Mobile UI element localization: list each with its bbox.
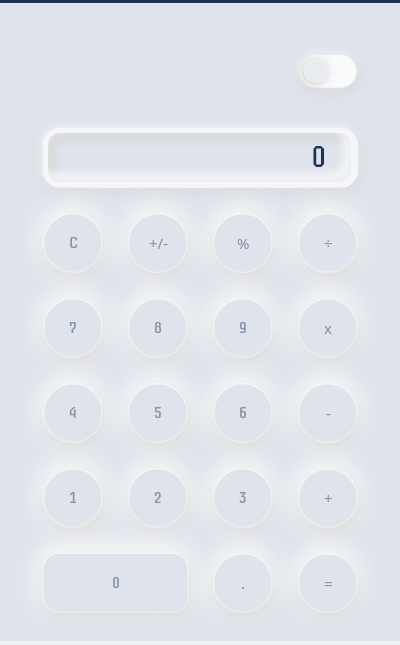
staticText: % [237, 233, 250, 253]
staticText: 9 [239, 318, 247, 338]
staticText: C [69, 233, 78, 253]
staticText: - [326, 403, 331, 423]
staticText: . [241, 573, 246, 593]
button[interactable]: 9 [214, 299, 272, 357]
staticText: 1 [69, 488, 77, 508]
button[interactable]: x [299, 299, 357, 357]
button[interactable]: 4 [44, 384, 102, 442]
button[interactable]: 6 [214, 384, 272, 442]
button[interactable]: Toggle dark mode [299, 55, 357, 88]
staticText: 0 [311, 138, 327, 176]
staticText: 3 [239, 488, 247, 508]
staticText: 7 [69, 318, 77, 338]
button[interactable]: 3 [214, 469, 272, 527]
button[interactable]: + [299, 469, 357, 527]
button[interactable]: - [299, 384, 357, 442]
button[interactable]: 8 [129, 299, 187, 357]
staticText: 6 [239, 403, 247, 423]
staticText: x [324, 318, 332, 338]
button[interactable]: ÷ [299, 214, 357, 272]
staticText: 2 [154, 488, 162, 508]
staticText: 4 [69, 403, 77, 423]
button[interactable]: 0 [44, 554, 188, 612]
button[interactable]: C [44, 214, 102, 272]
button[interactable]: +/- [129, 214, 187, 272]
button[interactable]: 2 [129, 469, 187, 527]
staticText: = [324, 573, 333, 593]
button[interactable]: 1 [44, 469, 102, 527]
button[interactable]: . [214, 554, 272, 612]
button[interactable]: = [299, 554, 357, 612]
staticText: 8 [154, 318, 162, 338]
button[interactable]: 7 [44, 299, 102, 357]
staticText: 0 [112, 573, 120, 593]
button[interactable]: % [214, 214, 272, 272]
staticText: +/- [149, 233, 168, 253]
staticText: + [324, 488, 333, 508]
staticText: 5 [154, 403, 162, 423]
button[interactable]: 5 [129, 384, 187, 442]
staticText: ÷ [324, 233, 333, 253]
